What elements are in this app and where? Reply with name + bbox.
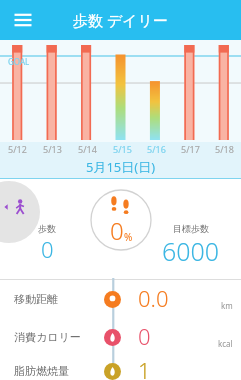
staticText: 移動距離 (14, 292, 58, 306)
staticText: 歩数 (38, 223, 56, 234)
staticText: 0 (41, 234, 54, 264)
staticText: 0 (138, 321, 151, 351)
button[interactable]: Activity type (0, 181, 40, 243)
staticText: 5/14 (78, 143, 97, 155)
staticText: GOAL (8, 56, 30, 67)
button[interactable]: 目標歩数 (147, 223, 235, 268)
staticText: 5月15日(日) (86, 158, 156, 176)
staticText: 消費カロリー (14, 330, 81, 344)
staticText: 5/13 (43, 143, 62, 155)
staticText: kcal (218, 338, 233, 349)
staticText: 目標歩数 (173, 223, 209, 234)
staticText: 歩数 デイリー (73, 10, 168, 30)
button[interactable]: 脂肪燃焼量 (0, 352, 241, 380)
button[interactable]: Menu (8, 5, 38, 35)
staticText: 0 (110, 214, 124, 247)
staticText: 脂肪燃焼量 (14, 364, 69, 378)
staticText: 5/18 (215, 143, 234, 155)
button[interactable]: Step progress (90, 189, 152, 251)
staticText: 0.0 (138, 283, 169, 313)
staticText: 5/16 (147, 143, 166, 155)
staticText: 5/17 (181, 143, 200, 155)
staticText: km (221, 300, 233, 311)
staticText: 1 (138, 355, 151, 380)
staticText: 5/15 (113, 143, 132, 155)
staticText: % (124, 230, 133, 244)
button[interactable]: 歩数 (14, 223, 80, 264)
button[interactable]: 移動距離 (0, 280, 241, 318)
staticText: 5/12 (8, 143, 27, 155)
button[interactable]: 消費カロリー (0, 318, 241, 356)
staticText: 6000 (162, 234, 220, 268)
